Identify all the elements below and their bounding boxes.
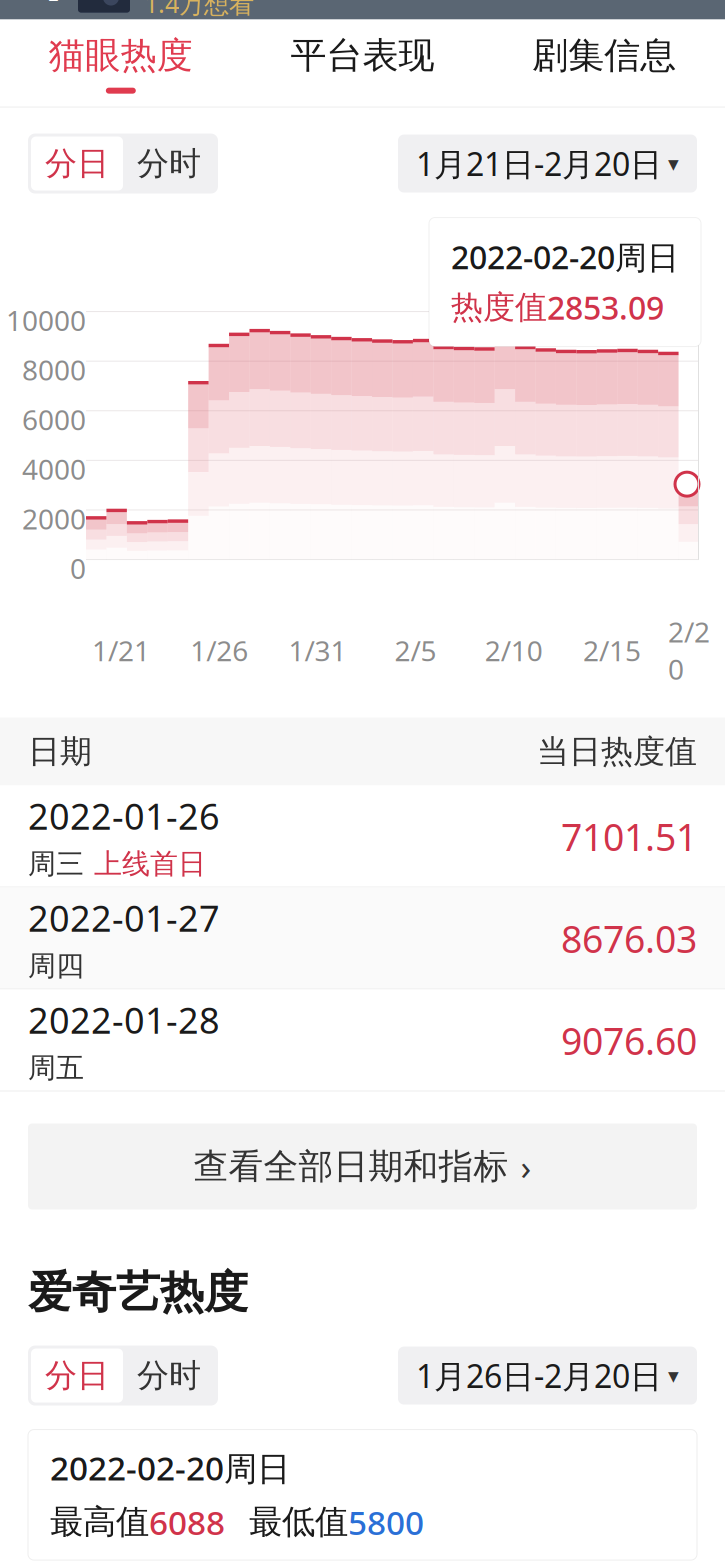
staticText: 1月26日-2月20日 — [416, 1354, 662, 1397]
button[interactable]: 1月21日-2月20日 — [398, 134, 697, 192]
button[interactable]: 猫眼热度 — [0, 19, 242, 107]
staticText: ▾ — [668, 151, 679, 176]
staticText: 1/26 — [190, 632, 248, 669]
button[interactable]: Back — [18, 0, 78, 15]
button[interactable]: 查看全部日期和指标 — [28, 1123, 697, 1209]
staticText: 周三 — [28, 847, 84, 881]
staticText: 周五 — [28, 1051, 84, 1085]
staticText: 2022-01-27 — [28, 894, 220, 942]
staticText: 上线首日 — [94, 847, 206, 881]
staticText: 查看全部日期和指标 — [193, 1145, 508, 1188]
button[interactable]: 2022-01-28 — [0, 989, 725, 1091]
button[interactable]: 1月26日-2月20日 — [398, 1347, 697, 1405]
staticText: 剧集信息 — [532, 33, 676, 78]
staticText: 爱奇艺热度 — [28, 1265, 248, 1319]
staticText: 2000 — [22, 500, 86, 537]
staticText: 8000 — [22, 351, 86, 388]
staticText: 猫眼热度 — [49, 33, 193, 78]
button[interactable]: 分日 — [31, 1349, 123, 1403]
staticText: 分日 — [45, 144, 109, 183]
staticText: 周四 — [28, 949, 84, 983]
staticText: 最低值 — [249, 1501, 348, 1542]
staticText: 2022-02-20周日 — [50, 1446, 290, 1490]
staticText: 4000 — [22, 450, 86, 487]
staticText: 1月21日-2月20日 — [416, 142, 662, 185]
staticText: 6000 — [22, 401, 86, 438]
staticText: › — [520, 1143, 531, 1189]
staticText: 2853.09 — [547, 286, 664, 328]
staticText: 7101.51 — [561, 812, 697, 861]
staticText: 1/31 — [288, 632, 346, 669]
staticText: 平台表现 — [290, 33, 434, 78]
button[interactable]: 2022-01-26 — [0, 785, 725, 887]
staticText: 2022-01-26 — [28, 792, 220, 840]
staticText: 1.4万想看 — [144, 0, 254, 20]
staticText: 分时 — [137, 1356, 201, 1395]
staticText: 0 — [70, 549, 86, 587]
button[interactable]: 平台表现 — [242, 19, 483, 107]
staticText: 1/21 — [92, 632, 150, 669]
staticText: 2/15 — [583, 632, 641, 669]
staticText: 分日 — [45, 1356, 109, 1395]
staticText: 热度值 — [451, 288, 547, 327]
staticText: 2022-02-20周日 — [451, 235, 679, 278]
button[interactable]: 分时 — [123, 136, 215, 190]
staticText: 6088 — [149, 1500, 225, 1544]
staticText: 最高值 — [50, 1501, 149, 1542]
staticText: 2/5 — [395, 632, 437, 669]
staticText: 8676.03 — [561, 914, 697, 963]
staticText: 2/10 — [485, 632, 543, 669]
staticText: 当日热度值 — [537, 732, 697, 771]
staticText: 5800 — [348, 1500, 424, 1544]
button[interactable]: 2022-01-27 — [0, 887, 725, 989]
staticText: 9076.60 — [561, 1016, 697, 1065]
staticText: 日期 — [28, 732, 92, 771]
button[interactable]: 分时 — [123, 1349, 215, 1403]
button[interactable]: 剧集信息 — [483, 19, 725, 107]
staticText: ▾ — [668, 1363, 679, 1388]
staticText: 10000 — [6, 301, 86, 339]
staticText: 分时 — [137, 144, 201, 183]
staticText: 2022-01-28 — [28, 996, 220, 1044]
button[interactable]: 分日 — [31, 136, 123, 190]
staticText: 2/20 — [668, 613, 710, 687]
